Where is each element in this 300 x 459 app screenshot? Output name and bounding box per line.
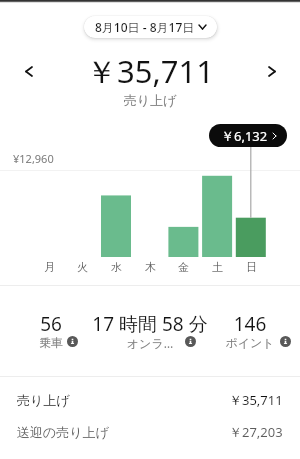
staticText: ￥35,711	[0, 50, 300, 92]
staticText: 金	[178, 260, 189, 274]
staticText: 木	[145, 260, 156, 274]
staticText: 月	[44, 260, 55, 274]
staticText: 水	[111, 260, 122, 274]
button[interactable]: Next period	[254, 53, 290, 89]
staticText: 火	[77, 260, 88, 274]
staticText: 56	[0, 311, 121, 337]
staticText: 土	[212, 260, 223, 274]
staticText: ￥27,203	[229, 423, 283, 441]
staticText: ￥6,132	[221, 127, 268, 145]
button[interactable]: 8月10日 - 8月17日	[84, 16, 217, 38]
staticText: 売り上げ	[17, 392, 70, 408]
staticText: 送迎の売り上げ	[17, 424, 109, 440]
staticText: ￥35,711	[229, 391, 283, 409]
staticText: 乗車	[0, 335, 121, 350]
button[interactable]: 送迎の売り上げ	[0, 416, 300, 448]
button[interactable]: 17 時間 58 分	[80, 311, 220, 353]
button[interactable]: ￥6,132	[209, 124, 287, 147]
staticText: ¥12,960	[13, 151, 54, 166]
button[interactable]: 売り上げ	[0, 384, 300, 416]
staticText: 17 時間 58 分	[80, 311, 220, 337]
staticText: 日	[246, 260, 257, 274]
staticText: オンラ…	[80, 335, 220, 351]
staticText: ポイント	[180, 335, 300, 350]
staticText: 8月10日 - 8月17日	[95, 19, 195, 35]
button[interactable]: Previous period	[11, 53, 47, 89]
button[interactable]: 56	[0, 311, 121, 353]
button[interactable]: 146	[180, 311, 300, 353]
staticText: 146	[180, 311, 300, 337]
staticText: 売り上げ	[0, 92, 300, 108]
